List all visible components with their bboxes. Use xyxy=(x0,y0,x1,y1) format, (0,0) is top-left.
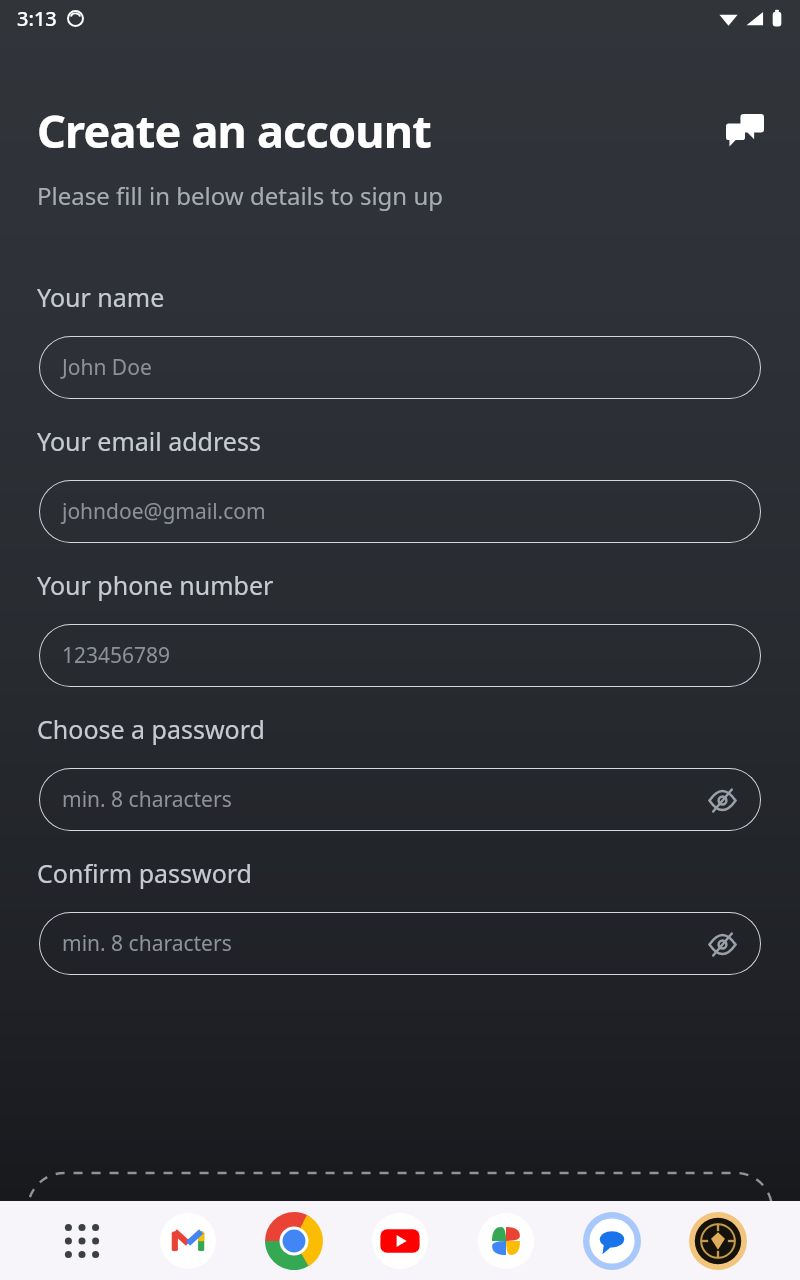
staticText: johndoe@gmail.com xyxy=(62,497,266,526)
button[interactable]: 123456789 xyxy=(39,624,761,687)
staticText: John Doe xyxy=(62,353,152,382)
staticText: min. 8 characters xyxy=(62,929,232,958)
staticText: 123456789 xyxy=(62,641,171,670)
button[interactable]: Chat support xyxy=(718,104,772,158)
staticText: 3:13 xyxy=(17,5,57,32)
button[interactable]: Game xyxy=(684,1207,752,1275)
staticText: Your phone number xyxy=(37,568,274,602)
button[interactable]: YouTube xyxy=(366,1207,434,1275)
button[interactable]: Sign up xyxy=(28,1173,772,1201)
button[interactable]: Gmail xyxy=(154,1207,222,1275)
button[interactable]: johndoe@gmail.com xyxy=(39,480,761,543)
button[interactable]: Show password xyxy=(705,927,739,961)
staticText: Choose a password xyxy=(37,712,265,746)
button[interactable]: Chrome xyxy=(260,1207,328,1275)
button[interactable]: John Doe xyxy=(39,336,761,399)
staticText: Create an account xyxy=(37,100,431,161)
button[interactable]: min. 8 characters xyxy=(39,768,761,831)
button[interactable]: All apps xyxy=(48,1207,116,1275)
staticText: Your email address xyxy=(37,424,261,458)
staticText: min. 8 characters xyxy=(62,785,232,814)
button[interactable]: Show password xyxy=(705,783,739,817)
button[interactable]: min. 8 characters xyxy=(39,912,761,975)
button[interactable]: Messages xyxy=(578,1207,646,1275)
staticText: Your name xyxy=(37,280,165,314)
button[interactable]: Photos xyxy=(472,1207,540,1275)
staticText: Please fill in below details to sign up xyxy=(37,179,444,212)
staticText: Confirm password xyxy=(37,856,252,890)
